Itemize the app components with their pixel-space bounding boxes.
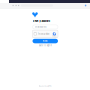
button[interactable]: I'm not a robot [32, 30, 58, 38]
staticText: I'm not a robot [38, 33, 50, 35]
staticText: reCAPTCHA [52, 35, 56, 38]
staticText: Email address [34, 26, 46, 28]
staticText: Next [43, 40, 48, 42]
button[interactable]: Email address [32, 25, 58, 29]
button[interactable]: Back to sign in [32, 44, 58, 47]
staticText: Bluesky Social, PBC [38, 85, 51, 87]
staticText: Reset password [32, 20, 50, 22]
staticText: Back to sign in [39, 44, 52, 47]
button[interactable]: Next [32, 39, 58, 43]
